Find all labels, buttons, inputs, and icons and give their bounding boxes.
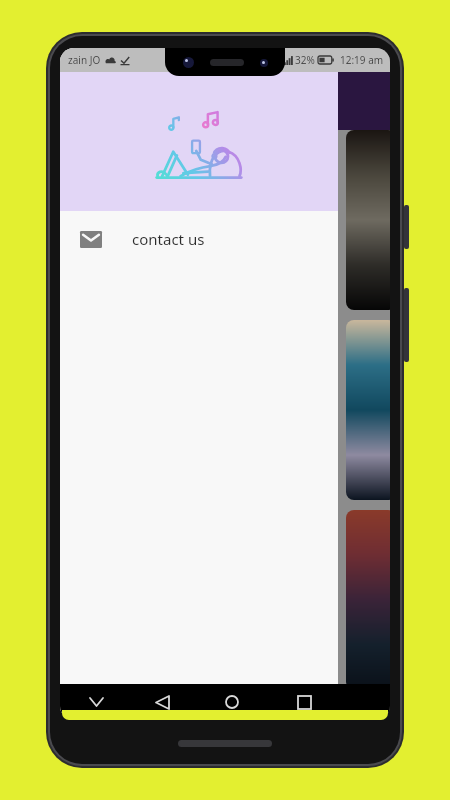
staticText: contact us <box>132 229 205 249</box>
staticText: 12:19 am <box>340 53 384 67</box>
button[interactable]: Recent app <box>346 510 390 690</box>
button[interactable]: Home <box>212 684 252 720</box>
staticText: zain JO <box>68 53 101 67</box>
staticText: 32% <box>295 53 315 67</box>
button[interactable]: contact us <box>60 211 338 267</box>
button[interactable]: Recent app <box>346 130 390 310</box>
button[interactable]: Back <box>142 684 182 720</box>
button[interactable]: Recent app <box>346 320 390 500</box>
button[interactable]: Hide <box>78 684 114 720</box>
button[interactable]: Recent apps <box>284 684 324 720</box>
